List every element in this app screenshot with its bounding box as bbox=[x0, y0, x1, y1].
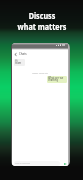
staticText: Chats bbox=[19, 52, 27, 56]
staticText: Today 10:25 AM bbox=[12, 72, 68, 75]
button[interactable]: Send bbox=[63, 162, 67, 166]
staticText: Hi team bbox=[15, 59, 24, 65]
staticText: Type a message bbox=[15, 162, 31, 165]
staticText: What are we chatting bbox=[48, 76, 66, 82]
staticText: Discuss what matters bbox=[17, 9, 67, 32]
button[interactable]: Back bbox=[13, 52, 17, 56]
button[interactable]: Type a message bbox=[14, 161, 60, 166]
